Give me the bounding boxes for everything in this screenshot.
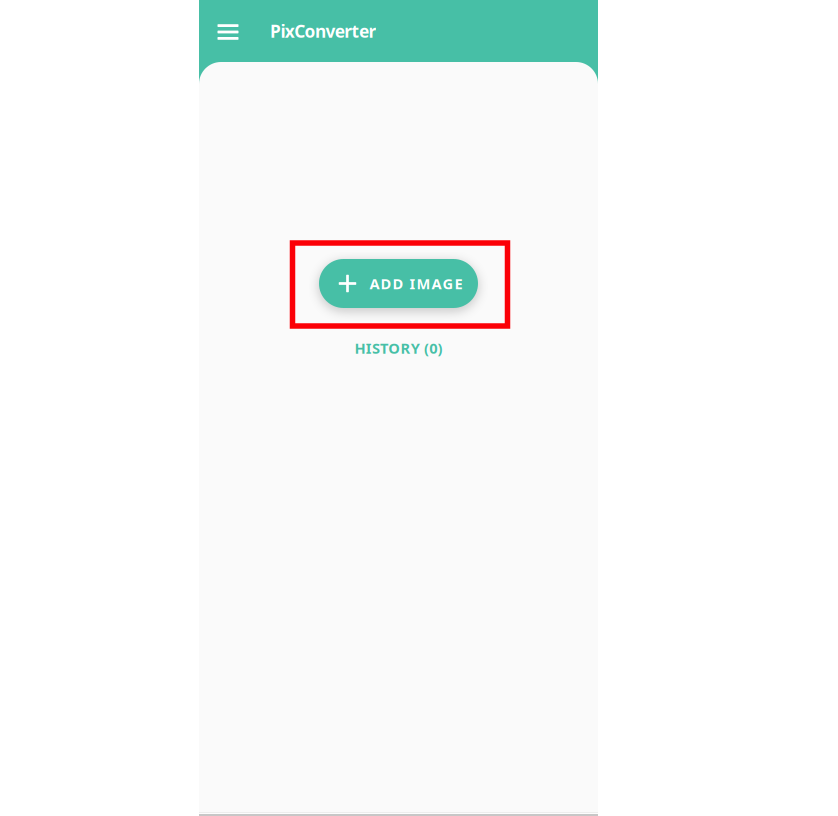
staticText: HISTORY (0) bbox=[354, 338, 442, 358]
button[interactable]: Menu bbox=[208, 0, 248, 62]
button[interactable]: ADD IMAGE bbox=[319, 259, 478, 308]
staticText: ADD IMAGE bbox=[369, 274, 462, 293]
staticText: PixConverter bbox=[270, 19, 376, 42]
button[interactable]: HISTORY (0) bbox=[199, 328, 598, 360]
